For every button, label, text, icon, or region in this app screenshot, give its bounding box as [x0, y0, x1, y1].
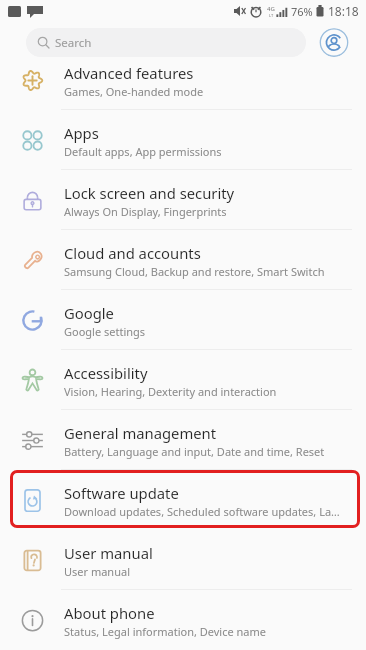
staticText: 4G — [267, 5, 275, 13]
button[interactable]: Account — [319, 28, 349, 57]
button[interactable]: Google — [0, 290, 366, 350]
button[interactable]: Advanced features — [0, 50, 366, 110]
staticText: Apps — [64, 123, 99, 143]
staticText: Google settings — [64, 324, 146, 339]
staticText: Battery, Language and input, Date and ti… — [64, 444, 325, 459]
staticText: User manual — [64, 564, 130, 579]
staticText: User manual — [64, 543, 153, 563]
staticText: 18:18 — [328, 3, 359, 19]
staticText: Accessibility — [64, 363, 148, 383]
button[interactable]: Accessibility — [0, 350, 366, 410]
staticText: General management — [64, 423, 217, 443]
button[interactable]: User manual — [0, 530, 366, 590]
staticText: LT — [269, 13, 274, 18]
staticText: Always On Display, Fingerprints — [64, 204, 227, 219]
staticText: About phone — [64, 603, 155, 623]
staticText: Cloud and accounts — [64, 243, 201, 263]
button[interactable]: About phone — [0, 590, 366, 650]
staticText: Google — [64, 303, 114, 323]
button[interactable]: General management — [0, 410, 366, 470]
button[interactable]: Software update — [0, 470, 366, 530]
staticText: Vision, Hearing, Dexterity and interacti… — [64, 384, 277, 399]
staticText: Default apps, App permissions — [64, 144, 222, 159]
staticText: 76% — [291, 4, 313, 19]
button[interactable]: Cloud and accounts — [0, 230, 366, 290]
staticText: Games, One-handed mode — [64, 84, 204, 99]
button[interactable]: Lock screen and security — [0, 170, 366, 230]
staticText: Advanced features — [64, 63, 194, 83]
staticText: Software update — [64, 483, 179, 503]
staticText: Search — [55, 35, 92, 51]
button[interactable]: Apps — [0, 110, 366, 170]
staticText: Status, Legal information, Device name — [64, 624, 267, 639]
staticText: Lock screen and security — [64, 183, 235, 203]
button[interactable]: Search — [26, 28, 306, 57]
staticText: Download updates, Scheduled software upd… — [64, 504, 340, 519]
staticText: Samsung Cloud, Backup and restore, Smart… — [64, 264, 325, 279]
